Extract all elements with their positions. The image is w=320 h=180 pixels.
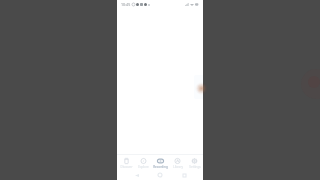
- staticText: Settings: [189, 165, 201, 169]
- button[interactable]: Recents: [180, 171, 188, 179]
- staticText: 10:45: [121, 2, 131, 7]
- button[interactable]: Floating action: [195, 82, 208, 95]
- staticText: Explore: [138, 165, 149, 169]
- button[interactable]: Settings: [186, 155, 203, 170]
- button[interactable]: Explore: [135, 155, 152, 170]
- staticText: Discover: [120, 165, 133, 169]
- button[interactable]: Back: [133, 171, 141, 179]
- staticText: Library: [173, 165, 183, 169]
- staticText: Recording: [153, 165, 168, 169]
- button[interactable]: Discover: [117, 155, 135, 170]
- button[interactable]: Library: [169, 155, 186, 170]
- button[interactable]: Recording: [152, 155, 169, 170]
- button[interactable]: Home: [156, 171, 164, 179]
